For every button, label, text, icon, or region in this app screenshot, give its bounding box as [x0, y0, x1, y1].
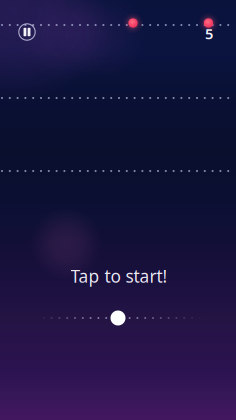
staticText: Tap to start!	[70, 264, 167, 287]
staticText: 5	[205, 24, 213, 43]
button[interactable]: Pause	[12, 17, 42, 47]
